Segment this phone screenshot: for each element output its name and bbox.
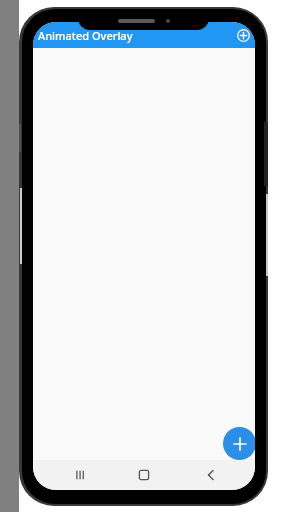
- button[interactable]: Add: [223, 427, 255, 460]
- button[interactable]: Recents: [63, 460, 100, 490]
- staticText: Animated Overlay: [38, 28, 133, 43]
- button[interactable]: Back: [192, 460, 229, 490]
- button[interactable]: Home: [126, 460, 163, 490]
- button[interactable]: Add overlay: [233, 25, 253, 45]
